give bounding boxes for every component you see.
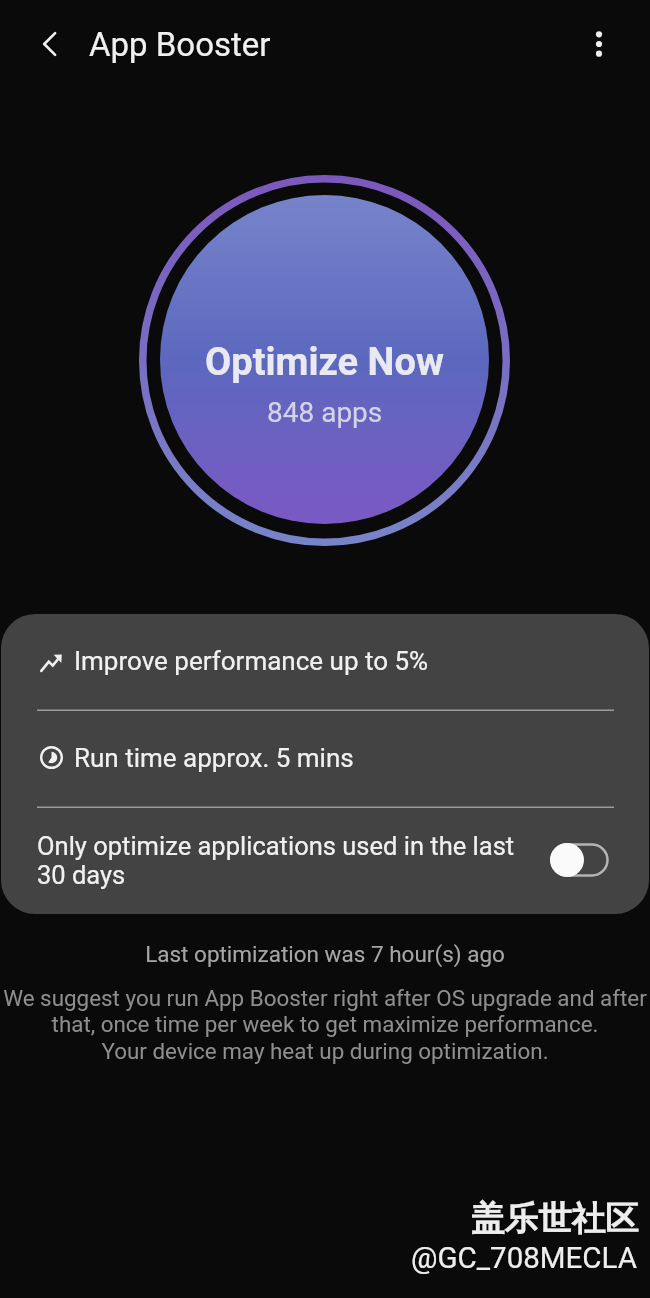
staticText: Run time approx. 5 mins (74, 743, 354, 773)
staticText: 848 apps (267, 396, 383, 429)
staticText: Improve performance up to 5% (74, 646, 429, 676)
staticText: 盖乐世社区 (471, 1198, 639, 1240)
button[interactable]: Improve performance up to 5% (1, 614, 649, 709)
button[interactable]: More options (570, 15, 628, 73)
staticText: App Booster (89, 25, 271, 64)
button[interactable]: Only optimize applications used in the l… (1, 808, 649, 914)
staticText: We suggest you run App Booster right aft… (0, 985, 650, 1065)
button[interactable]: Only optimize applications used in the l… (550, 843, 609, 877)
button[interactable]: Run time approx. 5 mins (1, 711, 649, 806)
staticText: Optimize Now (205, 340, 444, 385)
staticText: Last optimization was 7 hour(s) ago (0, 941, 650, 967)
staticText: Only optimize applications used in the l… (37, 831, 515, 890)
staticText: @GC_708MECLA (411, 1241, 637, 1276)
button[interactable]: Optimize Now (160, 195, 489, 524)
button[interactable]: Navigate up (21, 15, 79, 73)
